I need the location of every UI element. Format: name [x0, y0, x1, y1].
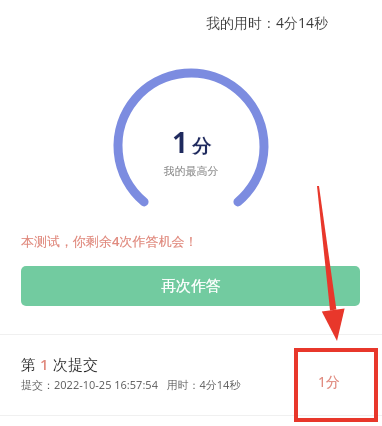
- other: Annotation arrow: [0, 0, 382, 426]
- staticText: 提交：2022-10-25 16:57:54 用时：4分14秒: [21, 377, 241, 392]
- staticText: 1分: [318, 372, 341, 391]
- button[interactable]: 再次作答: [21, 266, 360, 306]
- staticText: 次提交: [49, 354, 98, 374]
- staticText: 本测试，你剩余4次作答机会！: [21, 232, 198, 250]
- staticText: 我的用时：4分14秒: [206, 13, 329, 32]
- staticText: 我的最高分: [113, 164, 269, 178]
- staticText: 第: [21, 354, 40, 374]
- staticText: 1: [40, 354, 49, 374]
- staticText: 再次作答: [161, 277, 221, 296]
- button[interactable]: 第: [0, 335, 382, 415]
- staticText: 分: [192, 135, 211, 159]
- staticText: 1: [172, 123, 189, 161]
